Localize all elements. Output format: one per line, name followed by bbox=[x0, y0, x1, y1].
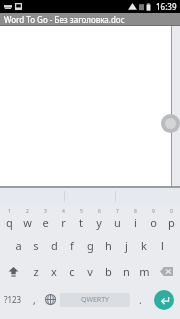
staticText: 0 bbox=[170, 208, 173, 215]
button[interactable] bbox=[0, 26, 171, 186]
button[interactable]: a bbox=[9, 232, 27, 258]
button[interactable]: Enter bbox=[154, 290, 174, 310]
button[interactable]: Change language bbox=[42, 284, 58, 315]
button[interactable]: m bbox=[135, 258, 153, 284]
staticText: 4 bbox=[62, 208, 65, 215]
staticText: 16:39 bbox=[156, 1, 177, 12]
button[interactable]: s bbox=[27, 232, 45, 258]
button[interactable]: k bbox=[135, 232, 153, 258]
staticText: . bbox=[139, 293, 142, 307]
staticText: QWERTY bbox=[81, 295, 110, 305]
button[interactable]: ?123 bbox=[0, 284, 26, 315]
button[interactable]: QWERTY bbox=[60, 293, 130, 307]
staticText: k bbox=[141, 238, 147, 253]
staticText: x bbox=[51, 264, 57, 279]
staticText: o bbox=[150, 215, 157, 230]
button[interactable]: Backspace bbox=[153, 258, 180, 284]
staticText: g bbox=[87, 238, 94, 253]
staticText: s bbox=[33, 238, 39, 253]
button[interactable]: Shift bbox=[0, 258, 27, 284]
staticText: 9 bbox=[152, 208, 155, 215]
staticText: b bbox=[105, 264, 112, 279]
staticText: c bbox=[69, 264, 75, 279]
staticText: 1 bbox=[8, 208, 11, 215]
button[interactable]: 4 bbox=[54, 205, 72, 232]
button[interactable]: Word To Go - Без заголовка.doc bbox=[0, 13, 180, 26]
staticText: ?123 bbox=[4, 294, 22, 305]
staticText: , bbox=[33, 293, 36, 307]
button[interactable]: b bbox=[99, 258, 117, 284]
button[interactable]: g bbox=[81, 232, 99, 258]
button[interactable]: f bbox=[63, 232, 81, 258]
button[interactable]: 3 bbox=[36, 205, 54, 232]
staticText: 8 bbox=[134, 208, 137, 215]
staticText: h bbox=[105, 238, 112, 253]
staticText: v bbox=[87, 264, 93, 279]
staticText: d bbox=[51, 238, 58, 253]
button[interactable]: 8 bbox=[126, 205, 144, 232]
button[interactable]: 6 bbox=[90, 205, 108, 232]
button[interactable]: h bbox=[99, 232, 117, 258]
button[interactable]: d bbox=[45, 232, 63, 258]
button[interactable]: x bbox=[45, 258, 63, 284]
staticText: 2 bbox=[26, 208, 29, 215]
button[interactable]: 5 bbox=[72, 205, 90, 232]
staticText: t bbox=[79, 215, 83, 230]
staticText: u bbox=[114, 215, 121, 230]
staticText: r bbox=[61, 215, 66, 230]
staticText: e bbox=[42, 215, 49, 230]
staticText: f bbox=[70, 238, 74, 253]
button[interactable]: 1 bbox=[0, 205, 18, 232]
button[interactable]: l bbox=[153, 232, 171, 258]
staticText: l bbox=[161, 238, 164, 253]
staticText: y bbox=[96, 215, 102, 230]
button[interactable]: 9 bbox=[144, 205, 162, 232]
staticText: Word To Go - Без заголовка.doc bbox=[4, 14, 125, 25]
button[interactable]: 0 bbox=[162, 205, 180, 232]
staticText: m bbox=[139, 264, 150, 279]
staticText: p bbox=[168, 215, 175, 230]
button[interactable]: j bbox=[117, 232, 135, 258]
staticText: z bbox=[33, 264, 39, 279]
staticText: j bbox=[125, 238, 128, 253]
staticText: 3 bbox=[44, 208, 47, 215]
button[interactable]: , bbox=[26, 284, 42, 315]
button[interactable]: Scroll handle bbox=[161, 114, 180, 133]
staticText: q bbox=[6, 215, 13, 230]
button[interactable]: z bbox=[27, 258, 45, 284]
staticText: w bbox=[23, 215, 32, 230]
button[interactable]: c bbox=[63, 258, 81, 284]
button[interactable]: 7 bbox=[108, 205, 126, 232]
button[interactable]: n bbox=[117, 258, 135, 284]
staticText: 5 bbox=[80, 208, 83, 215]
staticText: a bbox=[15, 238, 22, 253]
staticText: i bbox=[134, 215, 137, 230]
staticText: 7 bbox=[116, 208, 119, 215]
button[interactable]: . bbox=[132, 284, 148, 315]
button[interactable]: v bbox=[81, 258, 99, 284]
button[interactable]: 2 bbox=[18, 205, 36, 232]
staticText: n bbox=[123, 264, 130, 279]
staticText: 6 bbox=[98, 208, 101, 215]
